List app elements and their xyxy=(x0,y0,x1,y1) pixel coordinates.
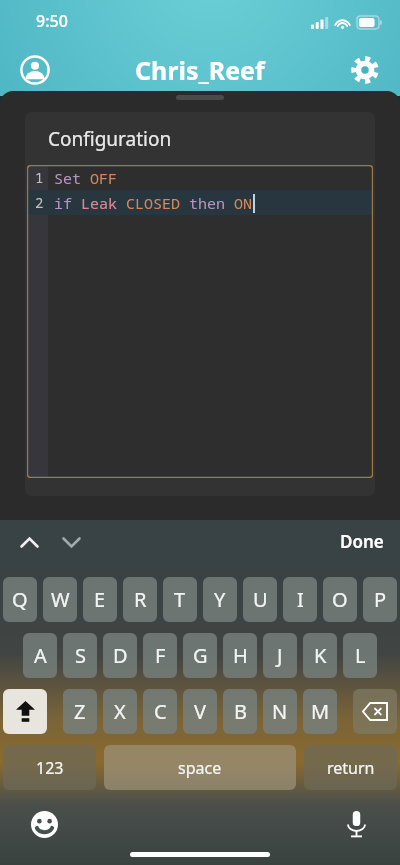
button[interactable]: S xyxy=(63,633,97,678)
button[interactable]: I xyxy=(283,577,317,622)
staticText: return xyxy=(327,757,375,779)
button[interactable]: Next xyxy=(52,523,90,561)
staticText: 1 xyxy=(35,168,44,187)
staticText: Chris_Reef xyxy=(135,53,265,87)
button[interactable]: J xyxy=(263,633,297,678)
staticText: K xyxy=(314,642,327,669)
button[interactable]: O xyxy=(323,577,357,622)
button[interactable]: K xyxy=(303,633,337,678)
button[interactable]: P xyxy=(363,577,397,622)
staticText: F xyxy=(155,642,166,669)
staticText: D xyxy=(113,642,128,669)
staticText: T xyxy=(174,586,186,613)
staticText: G xyxy=(193,642,208,669)
button[interactable]: X xyxy=(103,689,137,734)
staticText: C xyxy=(154,698,167,725)
button[interactable]: Emoji xyxy=(24,804,64,844)
button[interactable]: T xyxy=(163,577,197,622)
staticText: 2 xyxy=(35,193,44,212)
button[interactable]: 123 xyxy=(3,745,96,790)
staticText: I xyxy=(297,586,304,613)
staticText: Q xyxy=(12,586,28,613)
staticText: A xyxy=(34,642,47,669)
staticText: V xyxy=(194,698,206,725)
button[interactable]: L xyxy=(343,633,377,678)
staticText: if Leak CLOSED then ON xyxy=(54,193,253,213)
button[interactable]: A xyxy=(23,633,57,678)
button[interactable]: return xyxy=(304,745,397,790)
button[interactable]: Account xyxy=(12,47,58,93)
staticText: P xyxy=(374,586,387,613)
staticText: M xyxy=(311,698,330,725)
staticText: W xyxy=(51,586,70,613)
button[interactable]: Done xyxy=(340,530,384,553)
staticText: R xyxy=(134,586,147,613)
button[interactable]: N xyxy=(263,689,297,734)
button[interactable]: Y xyxy=(203,577,237,622)
staticText: U xyxy=(253,586,268,613)
button[interactable]: Backspace xyxy=(353,689,397,734)
staticText: E xyxy=(94,586,106,613)
staticText: space xyxy=(178,757,222,779)
button[interactable]: B xyxy=(223,689,257,734)
button[interactable]: Q xyxy=(3,577,37,622)
staticText: Done xyxy=(340,530,384,553)
staticText: 123 xyxy=(36,757,64,779)
staticText: N xyxy=(272,698,288,725)
staticText: O xyxy=(332,586,348,613)
staticText: Z xyxy=(74,698,86,725)
staticText: H xyxy=(233,642,248,669)
staticText: S xyxy=(75,642,86,669)
button[interactable]: F xyxy=(143,633,177,678)
staticText: B xyxy=(234,698,247,725)
staticText: Set OFF xyxy=(54,168,118,188)
button[interactable]: Previous xyxy=(10,523,48,561)
staticText: 9:50 xyxy=(36,10,68,32)
button[interactable]: D xyxy=(103,633,137,678)
button[interactable]: G xyxy=(183,633,217,678)
button[interactable]: Z xyxy=(63,689,97,734)
staticText: Y xyxy=(214,586,226,613)
button[interactable]: U xyxy=(243,577,277,622)
staticText: J xyxy=(277,642,283,669)
button[interactable]: Settings xyxy=(342,47,388,93)
staticText: Configuration xyxy=(48,126,172,152)
button[interactable]: space xyxy=(104,745,296,790)
button[interactable]: M xyxy=(303,689,337,734)
staticText: L xyxy=(355,642,366,669)
staticText: X xyxy=(114,698,126,725)
button[interactable]: W xyxy=(43,577,77,622)
button[interactable]: C xyxy=(143,689,177,734)
button[interactable]: V xyxy=(183,689,217,734)
button[interactable]: Dictation xyxy=(336,804,376,844)
button[interactable]: H xyxy=(223,633,257,678)
button[interactable]: Shift xyxy=(3,689,47,734)
button[interactable]: R xyxy=(123,577,157,622)
button[interactable]: E xyxy=(83,577,117,622)
